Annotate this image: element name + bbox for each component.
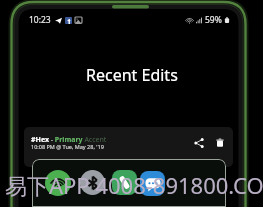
button[interactable]: Phone xyxy=(112,170,137,195)
button[interactable]: Bluetooth xyxy=(80,170,105,195)
button[interactable]: Wi-Fi xyxy=(45,170,71,196)
staticText: 59% xyxy=(205,14,222,26)
staticText: 10:23 xyxy=(29,14,51,26)
staticText: 易下APP 4008-891800.COM xyxy=(5,170,263,200)
button[interactable]: Share xyxy=(192,136,205,149)
button[interactable]: Messages xyxy=(140,171,165,196)
button[interactable]: Delete xyxy=(213,136,226,149)
button[interactable]: #Hex - Primary Accent xyxy=(24,127,233,167)
staticText: Recent Edits xyxy=(86,64,178,86)
staticText: 10:08 PM @ Tue, May 28, '19 xyxy=(31,143,104,150)
staticText: #Hex - Primary Accent xyxy=(31,135,107,145)
